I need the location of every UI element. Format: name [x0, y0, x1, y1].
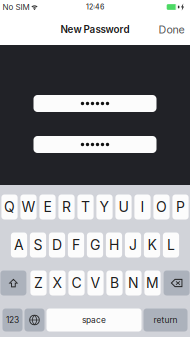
staticText: Q	[4, 198, 15, 215]
staticText: J	[129, 236, 137, 253]
staticText: D	[52, 236, 62, 253]
button[interactable]: Return	[143, 308, 187, 331]
button[interactable]: Password field	[33, 95, 156, 112]
staticText: R	[62, 198, 71, 215]
button[interactable]: T	[77, 194, 94, 219]
button[interactable]: D	[49, 232, 65, 257]
staticText: New Password	[60, 23, 129, 35]
button[interactable]: I	[134, 194, 151, 219]
button[interactable]: A	[11, 232, 27, 257]
staticText: 12:46	[86, 3, 104, 11]
staticText: T	[81, 198, 90, 215]
button[interactable]: J	[125, 232, 141, 257]
staticText: S	[33, 236, 42, 253]
button[interactable]: F	[68, 232, 84, 257]
button[interactable]: W	[20, 194, 37, 219]
button[interactable]: Next keyboard	[24, 308, 44, 331]
button[interactable]: S	[30, 232, 46, 257]
staticText: N	[128, 274, 139, 291]
staticText: K	[147, 236, 156, 253]
staticText: F	[72, 236, 80, 253]
staticText: B	[110, 274, 119, 291]
button[interactable]: Q	[1, 194, 18, 219]
staticText: C	[71, 274, 81, 291]
button[interactable]: E	[39, 194, 56, 219]
staticText: P	[176, 198, 185, 215]
staticText: return	[153, 315, 177, 325]
button[interactable]: Z	[30, 270, 47, 295]
staticText: space	[82, 315, 106, 325]
button[interactable]: U	[115, 194, 132, 219]
staticText: O	[156, 198, 167, 215]
button[interactable]: V	[87, 270, 104, 295]
button[interactable]: M	[144, 270, 161, 295]
staticText: E	[43, 198, 51, 215]
staticText: 123	[6, 315, 19, 325]
staticText: Z	[34, 274, 43, 291]
button[interactable]: O	[153, 194, 170, 219]
staticText: I	[140, 198, 144, 215]
staticText: Y	[99, 198, 109, 215]
button[interactable]: X	[49, 270, 66, 295]
staticText: G	[90, 236, 100, 253]
staticText: X	[52, 274, 62, 291]
button[interactable]: K	[144, 232, 160, 257]
staticText: L	[167, 236, 175, 253]
button[interactable]: Y	[96, 194, 113, 219]
button[interactable]: Done	[158, 14, 190, 45]
button[interactable]: Shift	[0, 270, 26, 295]
button[interactable]: Space	[46, 308, 141, 331]
button[interactable]: Delete	[164, 270, 190, 295]
staticText: H	[109, 236, 119, 253]
button[interactable]: L	[163, 232, 179, 257]
staticText: Done	[158, 23, 184, 36]
staticText: W	[21, 198, 35, 215]
button[interactable]: H	[106, 232, 122, 257]
staticText: A	[14, 236, 24, 253]
button[interactable]: R	[58, 194, 75, 219]
staticText: No SIM	[2, 2, 29, 12]
button[interactable]: N	[125, 270, 142, 295]
button[interactable]: G	[87, 232, 103, 257]
button[interactable]: P	[172, 194, 189, 219]
button[interactable]: Password field	[33, 136, 156, 153]
staticText: U	[118, 198, 128, 215]
staticText: V	[90, 274, 100, 291]
staticText: M	[146, 274, 159, 291]
button[interactable]: C	[68, 270, 85, 295]
button[interactable]: B	[106, 270, 123, 295]
button[interactable]: Numbers	[2, 308, 22, 331]
